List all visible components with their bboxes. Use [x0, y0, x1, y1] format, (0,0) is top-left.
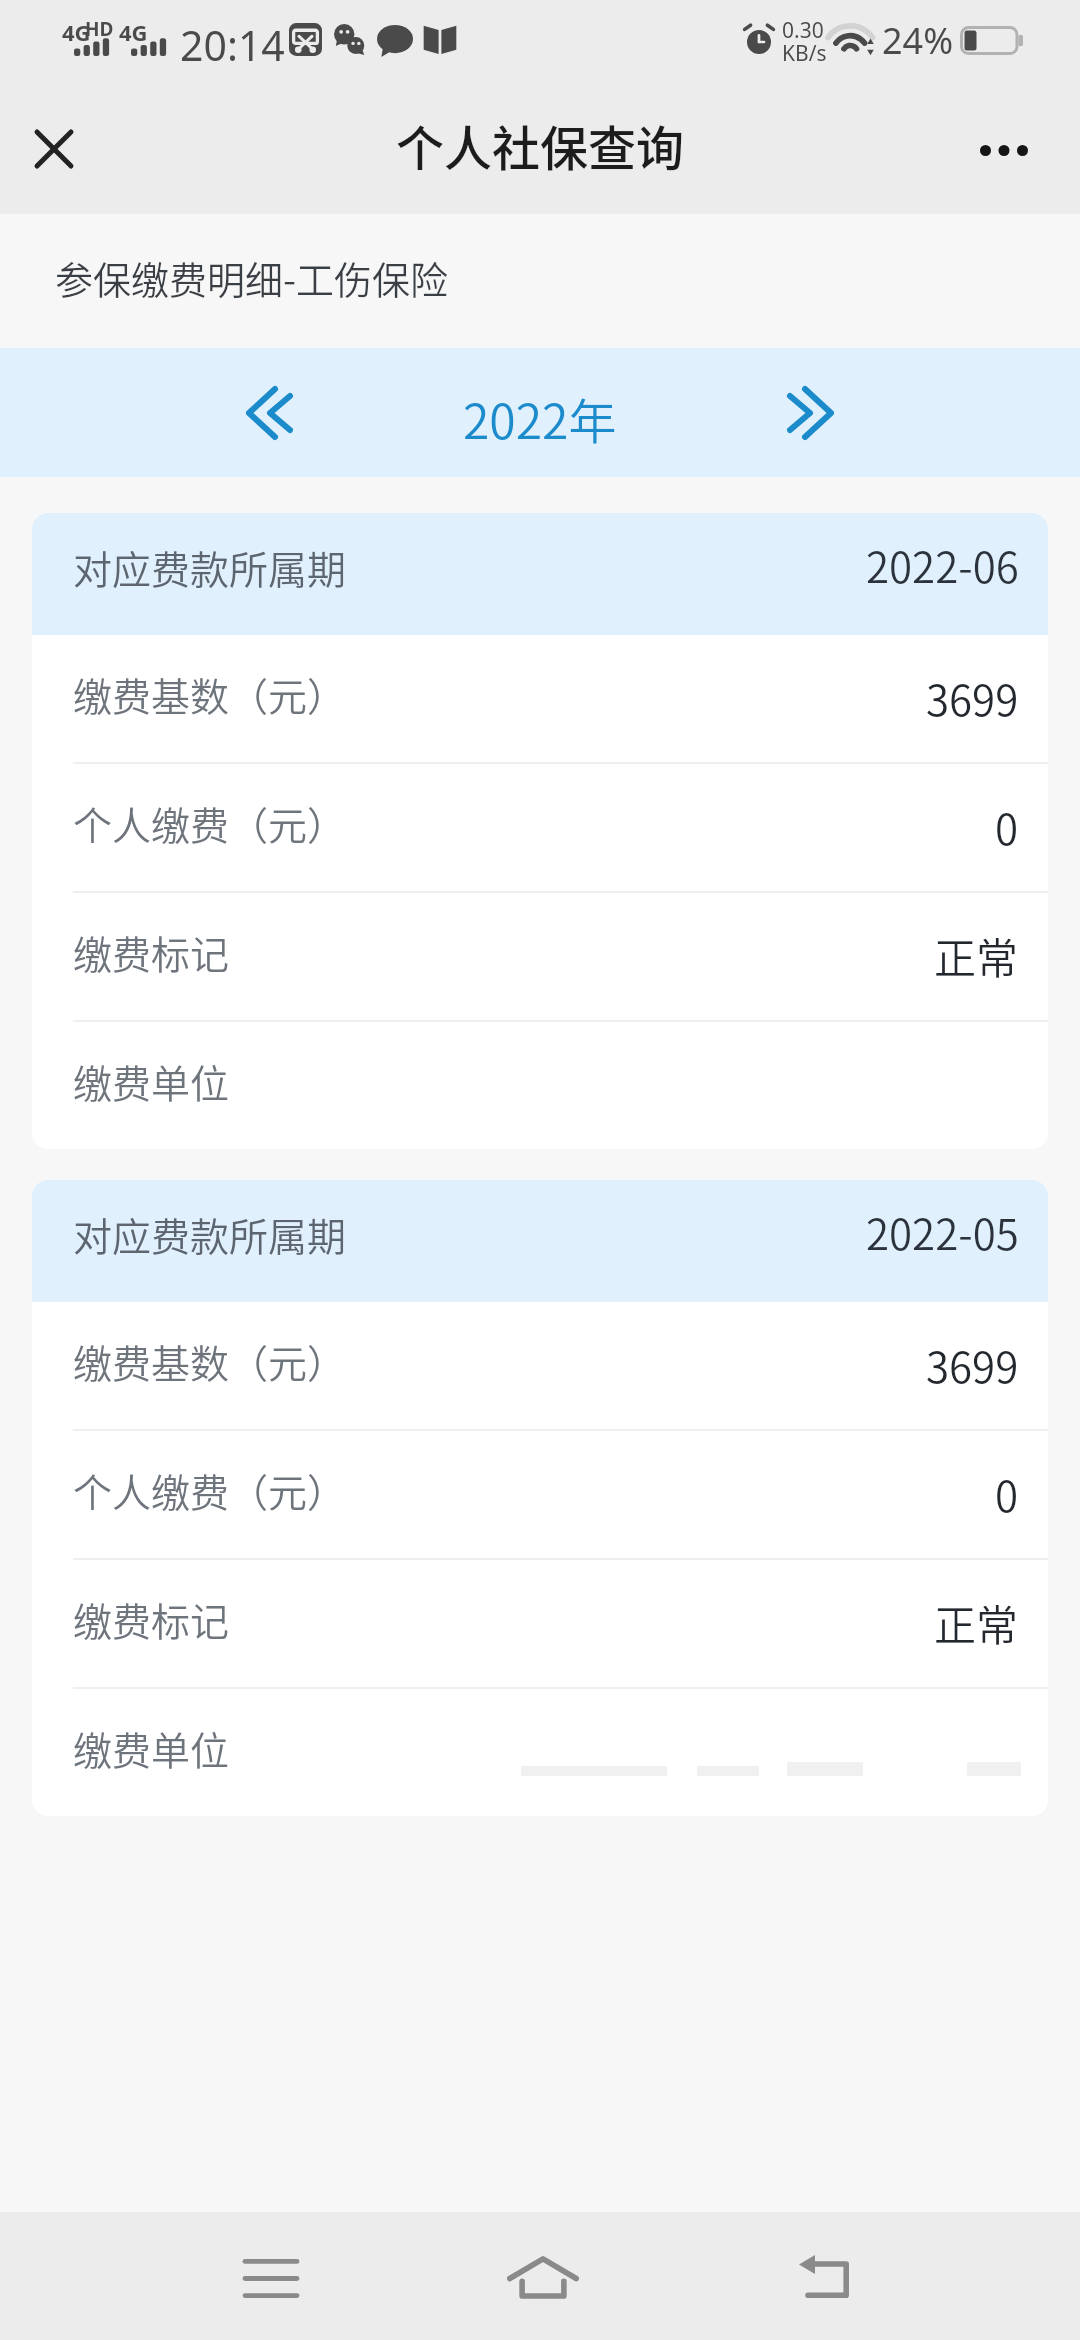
- staticText: 3699: [926, 1334, 1019, 1395]
- staticText: 3699: [926, 667, 1019, 728]
- button[interactable]: 对应费款所属期: [32, 1180, 1048, 1302]
- button[interactable]: 缴费单位: [32, 1022, 1048, 1149]
- staticText: 缴费基数（元）: [73, 666, 347, 722]
- staticText: 缴费单位: [73, 1720, 230, 1776]
- button[interactable]: 个人缴费（元）: [32, 764, 1048, 891]
- staticText: 缴费标记: [73, 1591, 230, 1647]
- button[interactable]: Home: [453, 2212, 633, 2340]
- button[interactable]: 缴费标记: [32, 893, 1048, 1020]
- staticText: 2022-06: [866, 534, 1019, 595]
- staticText: 24%: [882, 16, 954, 65]
- button[interactable]: 对应费款所属期: [32, 513, 1048, 635]
- button[interactable]: 缴费基数（元）: [32, 1302, 1048, 1429]
- staticText: 4G: [119, 17, 148, 47]
- staticText: KB/s: [782, 39, 827, 68]
- staticText: 缴费单位: [73, 1053, 230, 1109]
- button[interactable]: Back: [730, 2212, 910, 2340]
- button[interactable]: Close: [0, 86, 108, 214]
- button[interactable]: 缴费标记: [32, 1560, 1048, 1687]
- staticText: 2022年: [463, 383, 617, 453]
- staticText: 0.30: [782, 16, 824, 45]
- staticText: 20:14: [180, 17, 285, 73]
- staticText: 正常: [934, 1592, 1019, 1653]
- staticText: 个人缴费（元）: [73, 1462, 347, 1518]
- staticText: 个人社保查询: [396, 110, 685, 180]
- staticText: 缴费标记: [73, 924, 230, 980]
- staticText: HD: [85, 16, 114, 42]
- staticText: 4G: [62, 17, 91, 47]
- staticText: 0: [995, 1463, 1019, 1524]
- button[interactable]: 缴费基数（元）: [32, 635, 1048, 762]
- staticText: 对应费款所属期: [73, 1206, 347, 1262]
- staticText: 个人缴费（元）: [73, 795, 347, 851]
- staticText: 参保缴费明细-工伤保险: [55, 250, 449, 305]
- button[interactable]: Next year: [749, 348, 877, 477]
- button[interactable]: 个人缴费（元）: [32, 1431, 1048, 1558]
- staticText: 0: [995, 796, 1019, 857]
- button[interactable]: More options: [952, 86, 1080, 214]
- staticText: 对应费款所属期: [73, 539, 347, 595]
- button[interactable]: Recent apps: [181, 2212, 361, 2340]
- staticText: 缴费基数（元）: [73, 1333, 347, 1389]
- staticText: 2022-05: [866, 1201, 1019, 1262]
- button[interactable]: 缴费单位: [32, 1689, 1048, 1816]
- button[interactable]: Previous year: [203, 348, 331, 477]
- staticText: 正常: [934, 925, 1019, 986]
